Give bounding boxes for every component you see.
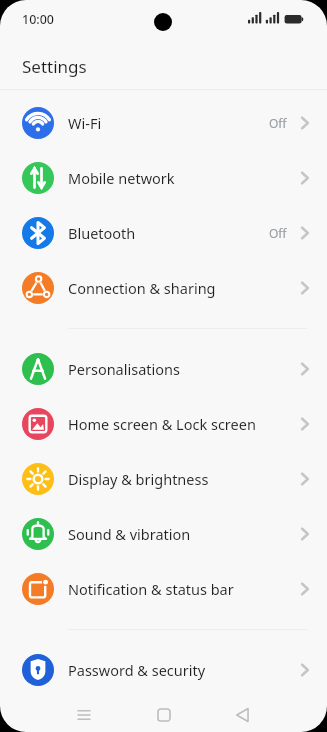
staticText: Home screen & Lock screen xyxy=(68,414,297,434)
staticText: Display & brightness xyxy=(68,469,297,489)
button[interactable]: Display & brightness xyxy=(0,451,327,506)
button[interactable]: Wi-Fi xyxy=(0,95,327,150)
staticText: Notification & status bar xyxy=(68,579,297,599)
button[interactable]: Notification & status bar xyxy=(0,561,327,616)
staticText: Off xyxy=(269,115,287,131)
button[interactable]: Home screen & Lock screen xyxy=(0,396,327,451)
button[interactable]: Personalisations xyxy=(0,341,327,396)
button[interactable]: Home xyxy=(148,699,180,731)
staticText: 10:00 xyxy=(22,11,55,28)
staticText: Settings xyxy=(22,55,87,78)
button[interactable]: Back xyxy=(227,699,259,731)
staticText: Off xyxy=(269,225,287,241)
button[interactable]: Password & security xyxy=(0,642,327,697)
button[interactable]: Mobile network xyxy=(0,150,327,205)
staticText: Personalisations xyxy=(68,359,297,379)
button[interactable]: Sound & vibration xyxy=(0,506,327,561)
staticText: Sound & vibration xyxy=(68,524,297,544)
staticText: Password & security xyxy=(68,660,297,680)
staticText: Mobile network xyxy=(68,168,297,188)
button[interactable]: Connection & sharing xyxy=(0,260,327,315)
staticText: Bluetooth xyxy=(68,223,269,243)
staticText: Connection & sharing xyxy=(68,278,297,298)
button[interactable]: Recent apps xyxy=(68,699,100,731)
staticText: Wi-Fi xyxy=(68,113,269,133)
button[interactable]: Bluetooth xyxy=(0,205,327,260)
